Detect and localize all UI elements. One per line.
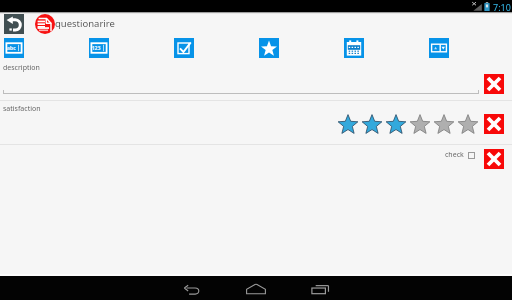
button[interactable]: rate 6	[458, 114, 478, 134]
button[interactable]: check	[445, 145, 475, 165]
button[interactable]: checkbox	[174, 38, 194, 58]
button[interactable]: dropdown	[429, 38, 449, 58]
button[interactable]: rate 4	[410, 114, 430, 134]
button[interactable]: rate 5	[434, 114, 454, 134]
button[interactable]: rate 1	[338, 114, 358, 134]
staticText: abc	[7, 45, 16, 52]
staticText: satisfaction	[3, 104, 41, 114]
button[interactable]: rating	[259, 38, 279, 58]
staticText: check	[445, 150, 464, 160]
button[interactable]: Remove	[484, 114, 504, 134]
button[interactable]: Home	[246, 283, 266, 295]
button[interactable]: date	[344, 38, 364, 58]
staticText: 123	[92, 45, 101, 52]
button[interactable]: Back	[184, 284, 200, 296]
button[interactable]: Recents	[311, 283, 329, 295]
button[interactable]: rate 3	[386, 114, 406, 134]
button[interactable]: Back	[4, 14, 24, 34]
staticText: description	[3, 63, 40, 73]
button[interactable]: rate 2	[362, 114, 382, 134]
button[interactable]: text field	[4, 38, 24, 58]
button[interactable]: Remove	[484, 74, 504, 94]
button[interactable]: Remove	[484, 149, 504, 169]
staticText: questionarire	[55, 17, 115, 30]
button[interactable]: number field	[89, 38, 109, 58]
staticText: 7:10	[493, 1, 511, 13]
